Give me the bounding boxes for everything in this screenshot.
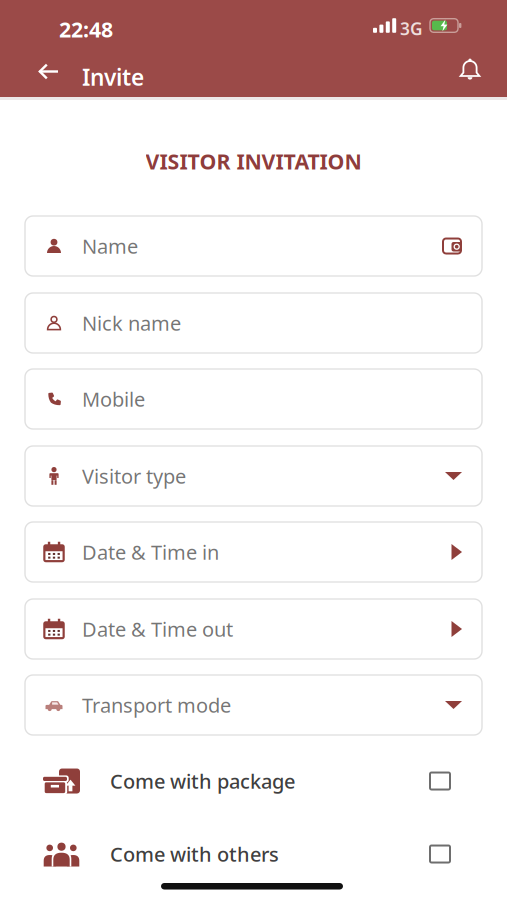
button[interactable]: Back: [26, 52, 71, 91]
button[interactable]: Visitor type: [25, 446, 482, 506]
staticText: Invite: [82, 62, 144, 92]
button[interactable]: Transport mode: [25, 675, 482, 735]
staticText: Visitor type: [82, 463, 186, 489]
staticText: 3G: [400, 17, 423, 40]
button[interactable]: Notifications: [449, 48, 491, 91]
button[interactable]: Come with others: [0, 824, 507, 884]
button[interactable]: Date & Time in: [25, 522, 482, 582]
staticText: Come with others: [110, 841, 279, 867]
staticText: Date & Time out: [82, 616, 233, 642]
button[interactable]: Nick name: [25, 293, 482, 353]
button[interactable]: Mobile: [25, 369, 482, 429]
staticText: VISITOR INVITATION: [145, 147, 361, 175]
button[interactable]: Pick contact: [443, 237, 462, 254]
button[interactable]: Come with package: [0, 751, 507, 811]
staticText: Name: [82, 233, 138, 259]
staticText: Transport mode: [82, 692, 231, 718]
button[interactable]: Date & Time out: [25, 599, 482, 659]
staticText: Date & Time in: [82, 539, 219, 565]
staticText: Mobile: [82, 386, 145, 412]
staticText: Come with package: [110, 768, 295, 794]
staticText: 22:48: [59, 15, 113, 43]
button[interactable]: Name: [25, 216, 482, 276]
staticText: Nick name: [82, 310, 181, 336]
